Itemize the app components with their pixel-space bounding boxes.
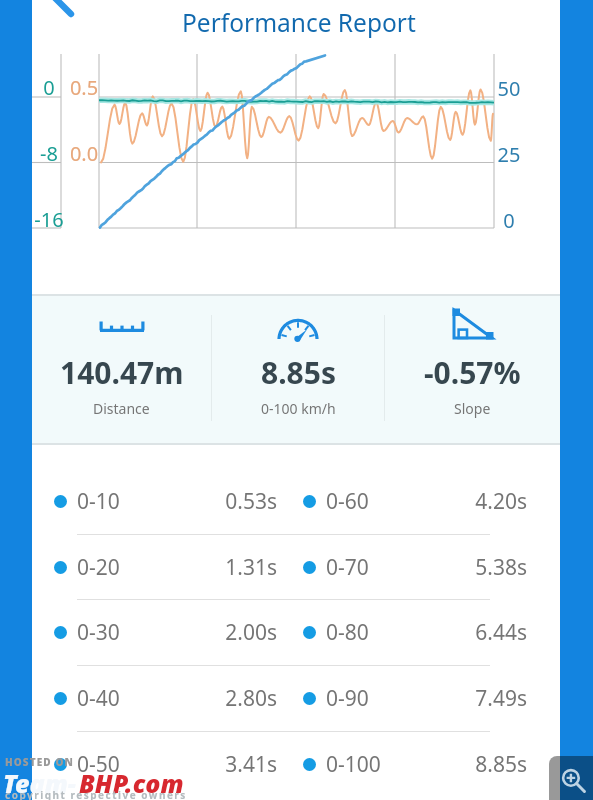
- staticText: Performance Report: [182, 6, 416, 39]
- button[interactable]: Zoom in: [549, 756, 593, 800]
- button[interactable]: -0.57%: [385, 296, 560, 443]
- staticText: 6.44s: [427, 618, 527, 647]
- staticText: 25: [489, 141, 529, 168]
- staticText: 0.0: [64, 140, 104, 167]
- staticText: 0-20: [77, 553, 120, 582]
- button[interactable]: 0-10: [32, 479, 560, 523]
- staticText: 0-100 km/h: [261, 399, 336, 418]
- staticText: 3.41s: [177, 750, 277, 779]
- staticText: 2.80s: [177, 684, 277, 713]
- button[interactable]: 0-40: [32, 676, 560, 720]
- staticText: 2.00s: [177, 618, 277, 647]
- staticText: 5.38s: [427, 553, 527, 582]
- staticText: 0-90: [326, 684, 369, 713]
- staticText: 0-50: [77, 750, 120, 779]
- staticText: Team-: [3, 766, 77, 800]
- staticText: 0: [489, 207, 529, 234]
- staticText: 7.49s: [427, 684, 527, 713]
- button[interactable]: 0-20: [32, 545, 560, 589]
- staticText: Slope: [454, 399, 491, 418]
- button[interactable]: 0-30: [32, 610, 560, 654]
- staticText: -16: [29, 206, 69, 233]
- button[interactable]: 140.47m: [32, 296, 211, 443]
- staticText: 8.85s: [427, 750, 527, 779]
- staticText: HOSTED ON: [5, 755, 74, 769]
- button[interactable]: 0-50: [32, 742, 560, 786]
- staticText: 0: [29, 74, 69, 101]
- staticText: 0-10: [77, 487, 120, 516]
- staticText: 0.5: [64, 74, 104, 101]
- staticText: 4.20s: [427, 487, 527, 516]
- staticText: 1.31s: [177, 553, 277, 582]
- staticText: 140.47m: [60, 352, 184, 393]
- staticText: 50: [489, 75, 529, 102]
- staticText: Distance: [93, 399, 150, 418]
- staticText: 0-60: [326, 487, 369, 516]
- staticText: copyright respective owners: [5, 788, 187, 800]
- staticText: 0-40: [77, 684, 120, 713]
- staticText: -8: [29, 140, 69, 167]
- button[interactable]: Back: [22, 0, 92, 22]
- staticText: -0.57%: [424, 352, 521, 393]
- staticText: 0-100: [326, 750, 381, 779]
- staticText: 0-30: [77, 618, 120, 647]
- button[interactable]: 8.85s: [212, 296, 384, 443]
- staticText: BHP.com: [79, 766, 184, 800]
- staticText: 0-70: [326, 553, 369, 582]
- staticText: 8.85s: [261, 352, 336, 393]
- staticText: 0-80: [326, 618, 369, 647]
- staticText: 0.53s: [177, 487, 277, 516]
